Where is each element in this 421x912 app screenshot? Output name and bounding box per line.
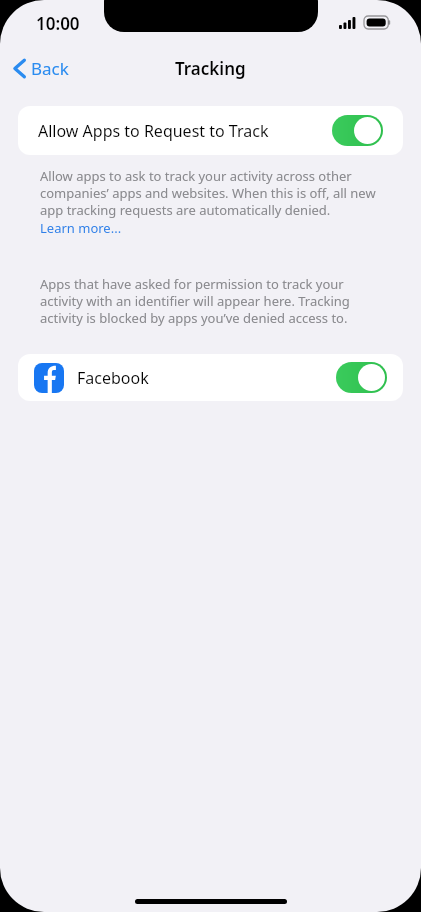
staticText: Back <box>31 57 69 80</box>
button[interactable]: Toggle <box>332 115 383 146</box>
staticText: Tracking <box>175 57 246 80</box>
staticText: Allow apps to ask to track your activity… <box>40 167 381 219</box>
staticText: Allow Apps to Request to Track <box>38 120 332 142</box>
button[interactable]: Toggle <box>336 362 387 393</box>
button[interactable]: Facebook <box>18 354 403 401</box>
staticText: Learn more... <box>40 219 122 237</box>
staticText: Facebook <box>77 367 336 389</box>
button[interactable]: Learn more... <box>40 219 122 237</box>
button[interactable]: Allow Apps to Request to Track <box>18 106 403 155</box>
button[interactable]: Back <box>0 51 79 86</box>
staticText: 10:00 <box>36 12 80 35</box>
staticText: Apps that have asked for permission to t… <box>40 275 381 327</box>
